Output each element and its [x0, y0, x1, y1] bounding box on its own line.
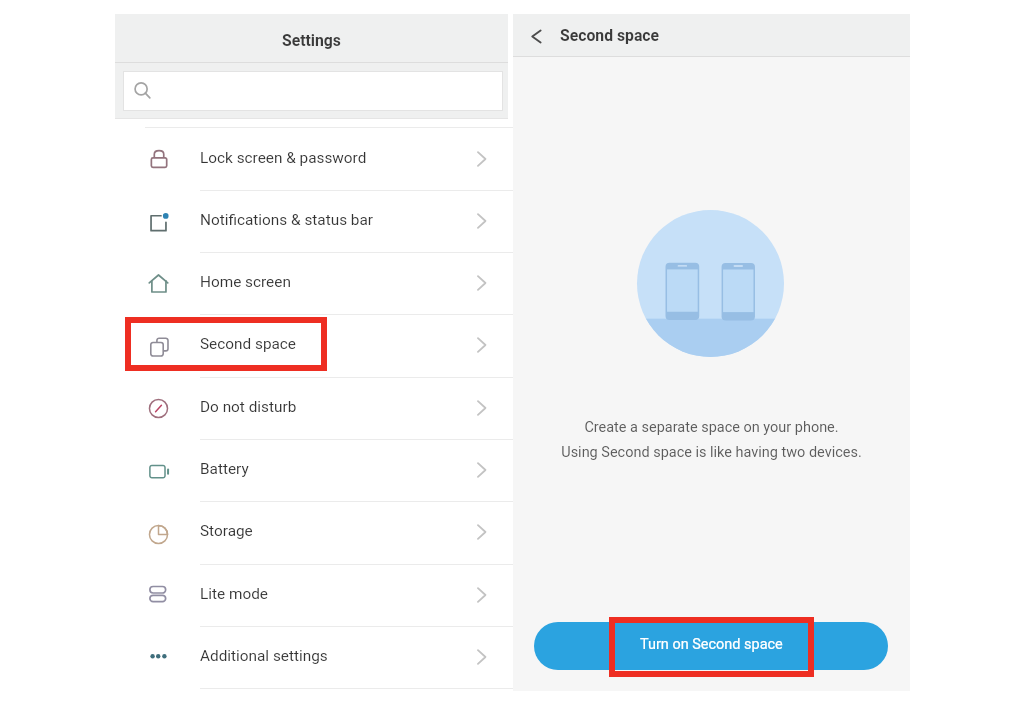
staticText: Home screen: [200, 273, 291, 291]
button[interactable]: Home screen: [115, 252, 508, 314]
staticText: Lite mode: [200, 585, 268, 603]
button[interactable]: Battery: [115, 439, 508, 501]
button[interactable]: Turn on Second space: [534, 622, 888, 670]
staticText: Second space: [200, 335, 297, 353]
staticText: Do not disturb: [200, 398, 297, 416]
staticText: Create a separate space on your phone.: [584, 419, 839, 436]
staticText: Settings: [282, 31, 341, 49]
button[interactable]: Back: [513, 14, 557, 56]
button[interactable]: Do not disturb: [115, 377, 508, 439]
staticText: Storage: [200, 522, 253, 540]
button[interactable]: Lite mode: [115, 564, 508, 626]
button[interactable]: Storage: [115, 501, 508, 563]
button[interactable]: Additional settings: [115, 626, 508, 688]
staticText: Turn on Second space: [640, 636, 783, 653]
button[interactable]: Search: [123, 71, 503, 111]
staticText: Notifications & status bar: [200, 211, 374, 229]
button[interactable]: Second space: [115, 314, 508, 376]
staticText: Using Second space is like having two de…: [561, 444, 862, 461]
button[interactable]: Notifications & status bar: [115, 190, 508, 252]
staticText: Second space: [560, 26, 660, 44]
staticText: Lock screen & password: [200, 149, 367, 167]
button[interactable]: Lock screen & password: [115, 128, 508, 190]
staticText: Additional settings: [200, 647, 328, 665]
staticText: Battery: [200, 460, 249, 478]
